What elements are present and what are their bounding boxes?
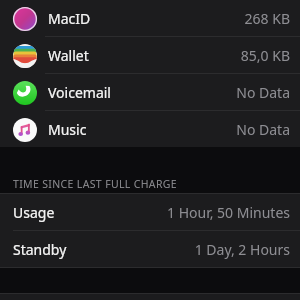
staticText: TIME SINCE LAST FULL CHARGE	[13, 177, 177, 191]
staticText: 1 Hour, 50 Minutes	[166, 203, 290, 222]
button[interactable]: Usage	[0, 194, 300, 230]
button[interactable]: Voicemail	[0, 74, 300, 111]
button[interactable]: MacID	[0, 0, 300, 37]
button[interactable]: Music	[0, 111, 300, 147]
staticText: 85,0 KB	[240, 46, 290, 65]
staticText: 1 Day, 2 Hours	[194, 240, 290, 259]
staticText: Voicemail	[48, 83, 111, 102]
staticText: No Data	[236, 120, 290, 139]
staticText: MacID	[48, 9, 91, 28]
button[interactable]: Wallet	[0, 37, 300, 74]
staticText: 268 KB	[244, 9, 290, 28]
staticText: Wallet	[48, 46, 89, 65]
staticText: No Data	[236, 83, 290, 102]
button[interactable]: Standby	[0, 231, 300, 267]
staticText: Standby	[13, 240, 67, 259]
staticText: Usage	[13, 203, 55, 222]
staticText: Music	[48, 120, 87, 139]
